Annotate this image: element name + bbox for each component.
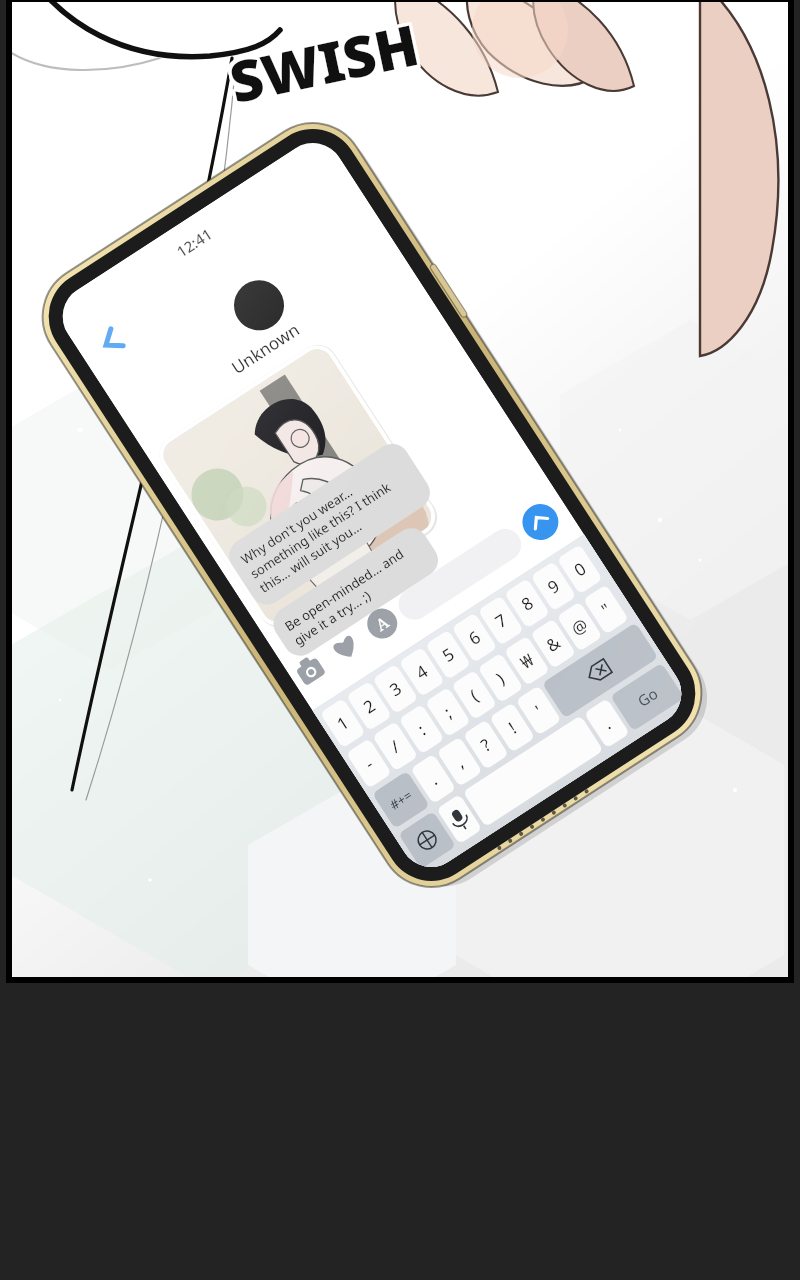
button[interactable]: Comic panel: phone chat with unknown sen… xyxy=(0,0,800,1280)
